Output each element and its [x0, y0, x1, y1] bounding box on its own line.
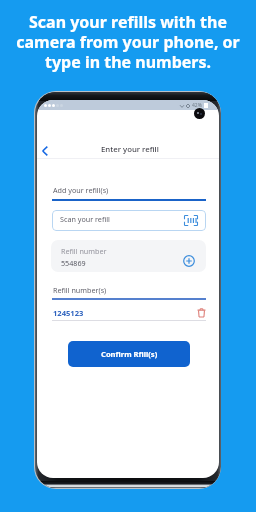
staticText: Refill number [61, 246, 107, 256]
staticText: Scan your refill [60, 214, 110, 224]
staticText: 1245123 [53, 308, 84, 318]
button[interactable]: Confirm Rfill(s) [68, 341, 190, 367]
staticText: 42% [192, 102, 202, 109]
button[interactable]: Add refill number [182, 254, 196, 268]
staticText: Refill number(s) [53, 285, 107, 295]
staticText: Scan your refills with the camera from y… [10, 11, 246, 72]
staticText: 554869 [61, 258, 86, 268]
staticText: Confirm Rfill(s) [101, 349, 158, 359]
button[interactable]: Delete refill number [193, 305, 209, 321]
button[interactable]: Scan your refill [52, 210, 206, 231]
button[interactable]: Back [37, 143, 53, 159]
other: Scan barcode [184, 215, 198, 226]
staticText: Enter your refill [101, 144, 159, 155]
staticText: Add your refill(s) [53, 185, 109, 195]
